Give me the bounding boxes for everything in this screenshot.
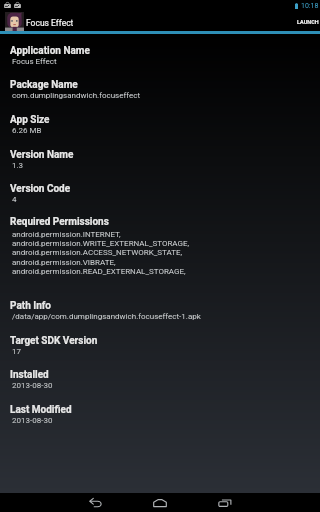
staticText: com.dumplingsandwich.focuseffect: [12, 91, 141, 100]
staticText: 2013-08-30: [12, 416, 53, 425]
button[interactable]: LAUNCH: [291, 11, 320, 31]
staticText: 1.3: [12, 161, 24, 170]
staticText: 2013-08-30: [12, 381, 53, 390]
staticText: Installed: [10, 369, 49, 381]
staticText: Path Info: [10, 300, 51, 312]
staticText: Version Name: [10, 149, 74, 161]
staticText: android.permission.READ_EXTERNAL_STORAGE…: [12, 267, 186, 276]
staticText: 10:18: [301, 2, 319, 10]
button[interactable]: Recent apps: [203, 493, 247, 512]
other: Home: [153, 499, 167, 507]
staticText: Version Code: [10, 183, 71, 195]
staticText: Application Name: [10, 45, 90, 57]
staticText: android.permission.VIBRATE,: [12, 258, 116, 267]
staticText: 4: [12, 195, 17, 204]
staticText: Required Permissions: [10, 216, 109, 228]
button[interactable]: Home: [138, 493, 182, 512]
other: Recent apps: [218, 499, 232, 507]
staticText: Focus Effect: [12, 57, 57, 66]
other: Back: [89, 498, 102, 507]
staticText: App Size: [10, 114, 50, 126]
staticText: 6.26 MB: [12, 126, 42, 135]
staticText: LAUNCH: [297, 19, 319, 25]
staticText: Package Name: [10, 79, 78, 91]
staticText: android.permission.WRITE_EXTERNAL_STORAG…: [12, 239, 190, 248]
staticText: android.permission.INTERNET,: [12, 230, 121, 239]
staticText: Focus Effect: [26, 18, 74, 28]
staticText: Target SDK Version: [10, 335, 98, 347]
staticText: android.permission.ACCESS_NETWORK_STATE,: [12, 248, 183, 257]
staticText: 17: [12, 347, 21, 356]
staticText: /data/app/com.dumplingsandwich.focuseffe…: [12, 312, 201, 321]
staticText: Last Modified: [10, 404, 72, 416]
button[interactable]: Back: [73, 493, 117, 512]
button[interactable]: Focus Effect: [0, 11, 74, 31]
